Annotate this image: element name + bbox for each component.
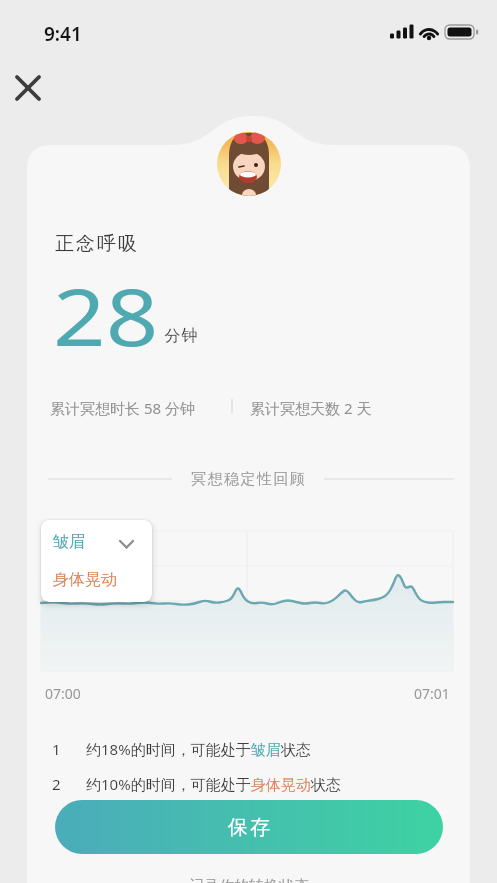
staticText: 2: [52, 774, 61, 794]
staticText: 保存: [227, 815, 271, 840]
staticText: 记录你的转换状态: [189, 877, 309, 883]
staticText: 累计冥想天数 2 天: [250, 398, 372, 418]
staticText: 冥想稳定性回顾: [191, 470, 307, 489]
button[interactable]: 保存: [55, 800, 443, 854]
staticText: 07:01: [414, 684, 450, 703]
staticText: 正念呼吸: [54, 232, 138, 256]
staticText: 07:00: [45, 684, 81, 703]
button[interactable]: [8, 68, 48, 108]
staticText: 约10%的时间，可能处于身体晃动状态: [86, 774, 341, 794]
staticText: 皱眉: [53, 532, 85, 552]
button[interactable]: 皱眉: [41, 520, 152, 602]
staticText: 身体晃动: [53, 570, 117, 590]
staticText: 累计冥想时长 58 分钟: [50, 398, 195, 418]
staticText: 9:41: [44, 21, 82, 47]
staticText: 约18%的时间，可能处于皱眉状态: [86, 739, 311, 759]
staticText: 分钟: [164, 326, 198, 346]
staticText: 1: [52, 739, 61, 759]
staticText: 28: [53, 263, 159, 369]
